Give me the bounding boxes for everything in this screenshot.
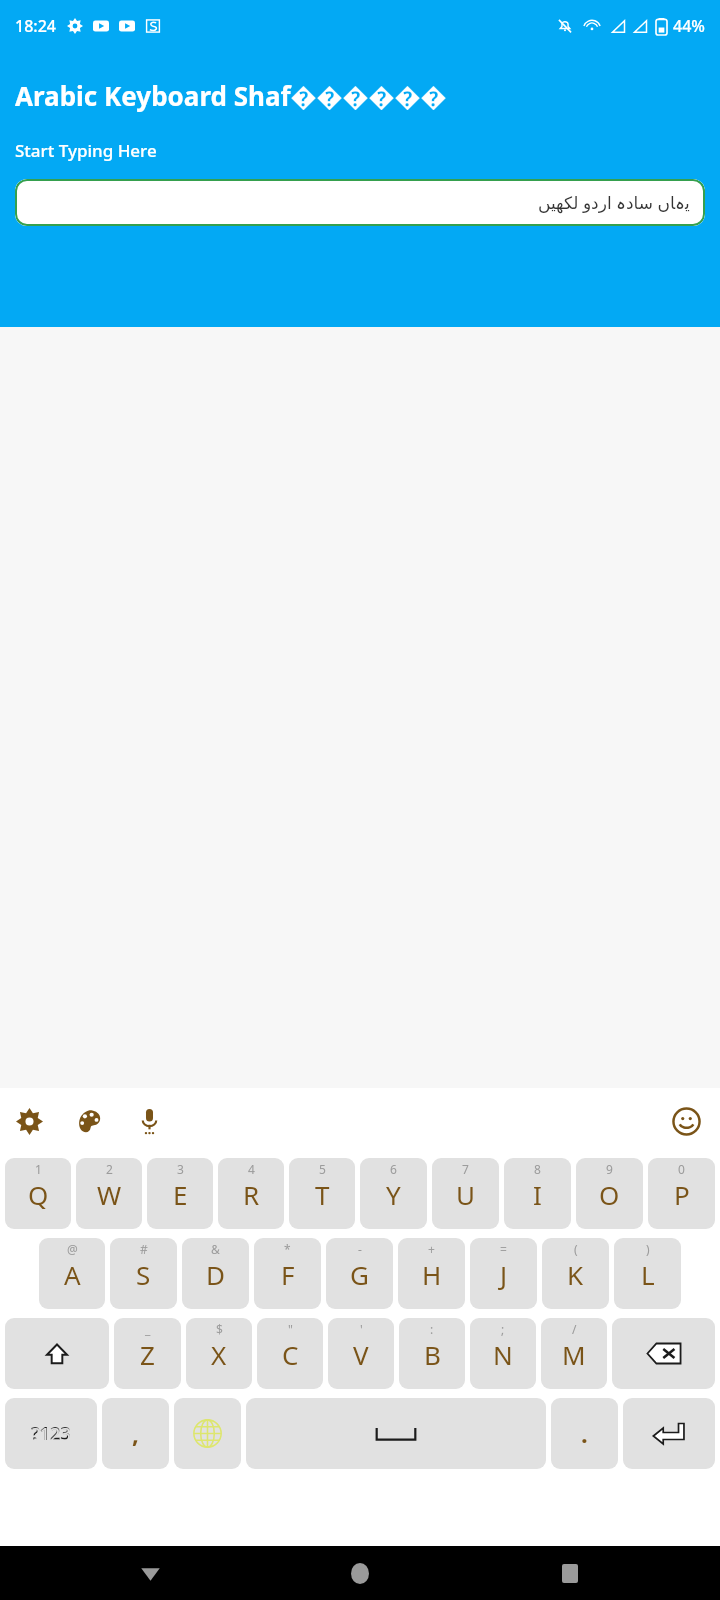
staticText: Q	[28, 1177, 49, 1212]
button[interactable]: Back	[128, 1551, 172, 1595]
button[interactable]: 5	[289, 1158, 355, 1229]
staticText: _	[145, 1321, 151, 1337]
staticText: /	[572, 1321, 577, 1337]
button[interactable]: 8	[504, 1158, 571, 1229]
staticText: E	[173, 1177, 188, 1212]
button[interactable]: Enter	[623, 1398, 715, 1469]
staticText: 0	[678, 1161, 685, 1177]
staticText: T	[315, 1177, 330, 1212]
staticText: 2	[106, 1161, 113, 1177]
staticText: .	[581, 1417, 588, 1450]
staticText: K	[567, 1257, 584, 1292]
staticText: W	[97, 1177, 122, 1212]
staticText: #	[140, 1241, 148, 1257]
staticText: L	[641, 1257, 655, 1292]
button[interactable]: .	[551, 1398, 618, 1469]
staticText: Start Typing Here	[15, 139, 157, 162]
button[interactable]: :	[399, 1318, 465, 1389]
staticText: ,	[132, 1417, 139, 1450]
button[interactable]: 3	[147, 1158, 213, 1229]
button[interactable]: 6	[360, 1158, 427, 1229]
button[interactable]: Space	[246, 1398, 546, 1469]
staticText: ?123	[31, 1421, 71, 1446]
button[interactable]: ?123	[5, 1398, 97, 1469]
button[interactable]: Settings	[6, 1098, 52, 1144]
button[interactable]: Theme	[66, 1098, 112, 1144]
staticText: Z	[140, 1337, 155, 1372]
button[interactable]: ,	[102, 1398, 169, 1469]
staticText: B	[424, 1337, 441, 1372]
button[interactable]: Emoji	[664, 1099, 708, 1143]
button[interactable]: $	[186, 1318, 252, 1389]
staticText: Arabic Keyboard Shaf������	[15, 78, 447, 113]
staticText: (	[574, 1241, 578, 1257]
staticText: 9	[606, 1161, 613, 1177]
staticText: M	[562, 1337, 586, 1372]
staticText: *	[284, 1241, 291, 1257]
button[interactable]: Backspace	[612, 1318, 715, 1389]
button[interactable]: ;	[470, 1318, 536, 1389]
button[interactable]: )	[614, 1238, 681, 1309]
staticText: J	[500, 1257, 508, 1292]
staticText: 18:24	[15, 15, 56, 37]
button[interactable]: -	[326, 1238, 393, 1309]
button[interactable]: Change language	[174, 1398, 241, 1469]
button[interactable]: Voice input	[126, 1098, 172, 1144]
staticText: :	[430, 1321, 434, 1337]
staticText: =	[500, 1241, 507, 1257]
staticText: V	[353, 1337, 369, 1372]
staticText: @	[67, 1241, 78, 1257]
staticText: "	[288, 1321, 293, 1337]
button[interactable]: 9	[576, 1158, 643, 1229]
button[interactable]: Shift	[5, 1318, 109, 1389]
button[interactable]: /	[541, 1318, 607, 1389]
staticText: Y	[386, 1177, 401, 1212]
button[interactable]: یہاں سادہ اردو لکھیں	[15, 179, 705, 226]
staticText: O	[599, 1177, 620, 1212]
button[interactable]: '	[328, 1318, 394, 1389]
button[interactable]: &	[182, 1238, 249, 1309]
button[interactable]: 1	[5, 1158, 71, 1229]
staticText: ?123	[32, 1422, 71, 1447]
staticText: R	[243, 1177, 260, 1212]
staticText: X	[211, 1337, 227, 1372]
button[interactable]: (	[542, 1238, 609, 1309]
staticText: 5	[319, 1161, 326, 1177]
button[interactable]: Recent apps	[548, 1551, 592, 1595]
button[interactable]: 0	[648, 1158, 715, 1229]
staticText: G	[350, 1257, 369, 1292]
button[interactable]: "	[257, 1318, 323, 1389]
button[interactable]: @	[39, 1238, 105, 1309]
staticText: 44%	[673, 15, 705, 37]
staticText: 7	[462, 1161, 469, 1177]
button[interactable]: *	[254, 1238, 321, 1309]
staticText: 6	[390, 1161, 397, 1177]
button[interactable]: +	[398, 1238, 465, 1309]
staticText: D	[206, 1257, 225, 1292]
staticText: P	[674, 1177, 690, 1212]
staticText: F	[281, 1257, 295, 1292]
staticText: H	[422, 1257, 442, 1292]
staticText: N	[493, 1337, 513, 1372]
staticText: 8	[534, 1161, 541, 1177]
button[interactable]: 7	[432, 1158, 499, 1229]
staticText: یہاں سادہ اردو لکھیں	[538, 191, 690, 214]
button[interactable]: Home	[338, 1551, 382, 1595]
button[interactable]: #	[110, 1238, 177, 1309]
button[interactable]: 2	[76, 1158, 142, 1229]
button[interactable]: =	[470, 1238, 537, 1309]
staticText: ;	[501, 1321, 505, 1337]
staticText: '	[360, 1321, 363, 1337]
staticText: I	[533, 1177, 542, 1212]
staticText: $	[216, 1321, 223, 1337]
staticText: 4	[248, 1161, 255, 1177]
staticText: -	[358, 1241, 362, 1257]
staticText: &	[211, 1241, 220, 1257]
staticText: A	[64, 1257, 81, 1292]
staticText: 1	[35, 1161, 42, 1177]
button[interactable]: _	[114, 1318, 181, 1389]
staticText: S	[136, 1257, 151, 1292]
staticText: +	[428, 1241, 435, 1257]
button[interactable]: 4	[218, 1158, 284, 1229]
staticText: C	[282, 1337, 299, 1372]
